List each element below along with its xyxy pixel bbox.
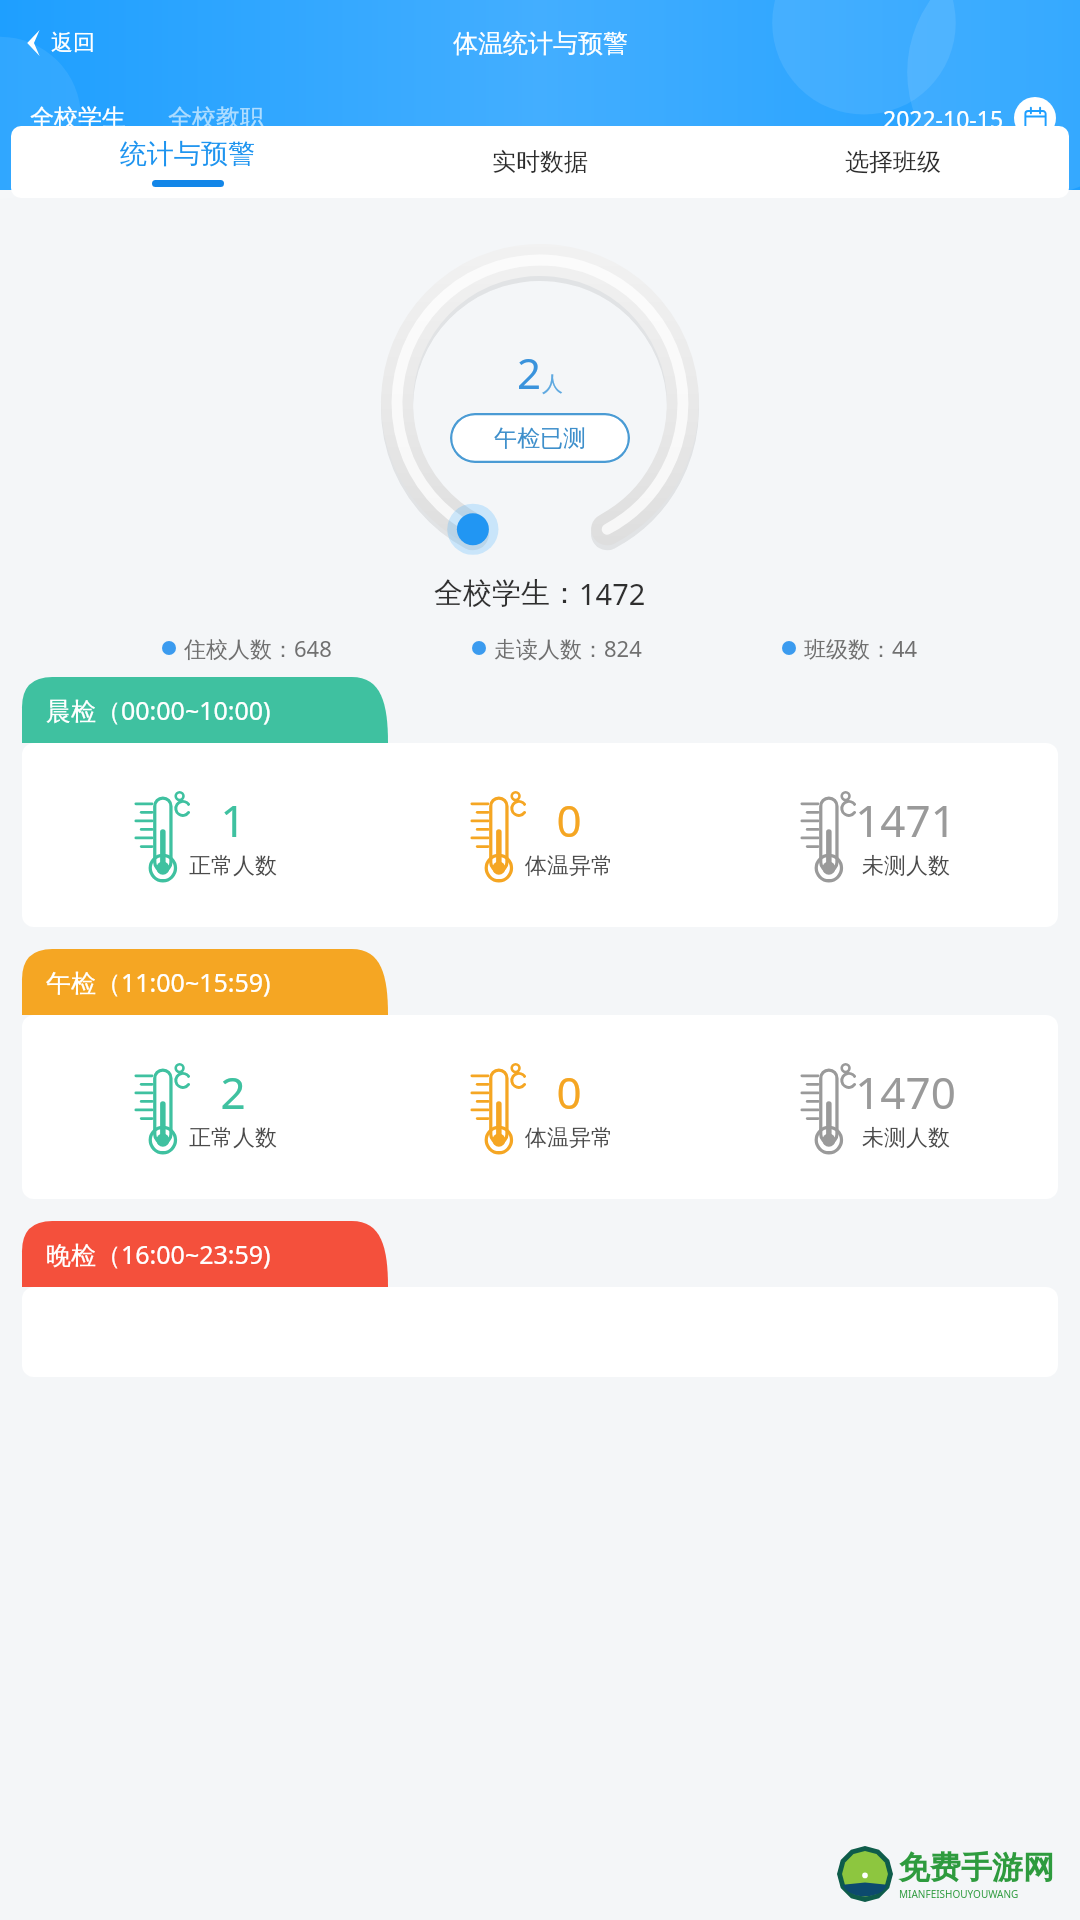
button[interactable]: 全校教职 — [158, 97, 274, 139]
staticText: 1471 — [855, 790, 956, 850]
button[interactable]: 2 — [36, 1059, 372, 1155]
staticText: 体温异常 — [525, 852, 613, 880]
staticText: 1 — [220, 790, 246, 850]
staticText: 全校教职 — [168, 103, 264, 133]
staticText: 2 — [517, 344, 542, 401]
staticText: 0 — [556, 790, 582, 850]
staticText: 1470 — [855, 1062, 956, 1122]
button[interactable]: 晚检（16:00~23:59) — [22, 1221, 388, 1287]
staticText: 晨检（00:00~10:00) — [46, 693, 271, 727]
button[interactable]: 1471 — [708, 787, 1044, 883]
staticText: 午检已测 — [494, 424, 586, 453]
staticText: 人 — [542, 371, 563, 397]
staticText: 免费手游网 — [899, 1848, 1054, 1887]
staticText: 统计与预警 — [120, 137, 255, 171]
button[interactable]: 2022-10-15 — [875, 95, 1060, 141]
button[interactable]: 实时数据 — [363, 126, 716, 198]
staticText: 实时数据 — [492, 147, 588, 177]
button[interactable]: 晨检（00:00~10:00) — [22, 677, 388, 743]
button[interactable]: 统计与预警 — [11, 126, 363, 198]
button[interactable]: 午检（11:00~15:59) — [22, 949, 388, 1015]
staticText: 晚检（16:00~23:59) — [46, 1237, 271, 1271]
staticText: 1472 — [579, 574, 646, 613]
button[interactable]: 0 — [372, 1059, 708, 1155]
button[interactable]: 全校学生 — [20, 97, 136, 139]
button[interactable]: 1470 — [708, 1059, 1044, 1155]
staticText: 正常人数 — [189, 1124, 277, 1152]
staticText: 0 — [556, 1062, 582, 1122]
staticText: 正常人数 — [189, 852, 277, 880]
staticText: 未测人数 — [862, 1124, 950, 1152]
button[interactable]: 0 — [372, 787, 708, 883]
staticText: 住校人数：648 — [184, 633, 332, 663]
button[interactable]: 选择班级 — [716, 126, 1069, 198]
staticText: 全校学生 — [30, 103, 126, 133]
staticText: 班级数：44 — [804, 633, 918, 663]
staticText: 2 — [220, 1062, 246, 1122]
staticText: 走读人数：824 — [494, 633, 642, 663]
staticText: 全校学生： — [434, 575, 579, 612]
staticText: 未测人数 — [862, 852, 950, 880]
staticText: 体温统计与预警 — [453, 28, 628, 59]
other: 选择日期 — [1014, 97, 1056, 139]
staticText: 选择班级 — [845, 147, 941, 177]
staticText: MIANFEISHOUYOUWANG — [899, 1887, 1019, 1901]
button[interactable]: 返回 — [18, 23, 101, 63]
staticText: 返回 — [51, 29, 95, 57]
staticText: 2022-10-15 — [883, 103, 1004, 134]
button[interactable]: 1 — [36, 787, 372, 883]
staticText: 午检（11:00~15:59) — [46, 965, 271, 999]
button[interactable]: 午检已测 — [450, 413, 630, 463]
staticText: 体温异常 — [525, 1124, 613, 1152]
